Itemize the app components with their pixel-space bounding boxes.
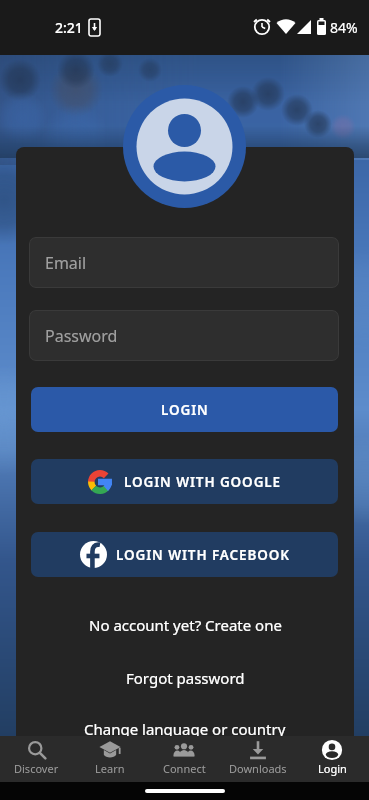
- button[interactable]: Forgot password: [16, 668, 354, 688]
- staticText: Email: [45, 252, 87, 274]
- button[interactable]: LOGIN WITH GOOGLE: [31, 459, 338, 504]
- staticText: No account yet? Create one: [89, 615, 282, 635]
- button[interactable]: LOGIN: [31, 387, 338, 432]
- button[interactable]: Downloads: [221, 736, 295, 782]
- button[interactable]: Discover: [0, 736, 73, 782]
- button[interactable]: Learn: [73, 736, 147, 782]
- staticText: Learn: [95, 761, 125, 776]
- staticText: 2:21: [55, 18, 83, 37]
- staticText: Connect: [163, 761, 206, 776]
- staticText: Forgot password: [126, 668, 245, 688]
- button[interactable]: No account yet? Create one: [16, 615, 354, 635]
- button[interactable]: LOGIN WITH FACEBOOK: [31, 532, 338, 577]
- button[interactable]: Change language or country: [16, 719, 354, 739]
- staticText: Change language or country: [84, 719, 286, 739]
- staticText: Downloads: [229, 761, 287, 776]
- button[interactable]: Login: [295, 736, 369, 782]
- staticText: LOGIN WITH FACEBOOK: [116, 546, 290, 564]
- button[interactable]: Email: [29, 237, 339, 288]
- button[interactable]: Connect: [147, 736, 221, 782]
- staticText: Password: [45, 325, 118, 347]
- staticText: LOGIN WITH GOOGLE: [124, 473, 282, 491]
- staticText: Discover: [14, 761, 59, 776]
- button[interactable]: Password: [29, 310, 339, 361]
- staticText: 84%: [330, 18, 358, 37]
- staticText: LOGIN: [161, 401, 209, 419]
- staticText: Login: [318, 761, 347, 776]
